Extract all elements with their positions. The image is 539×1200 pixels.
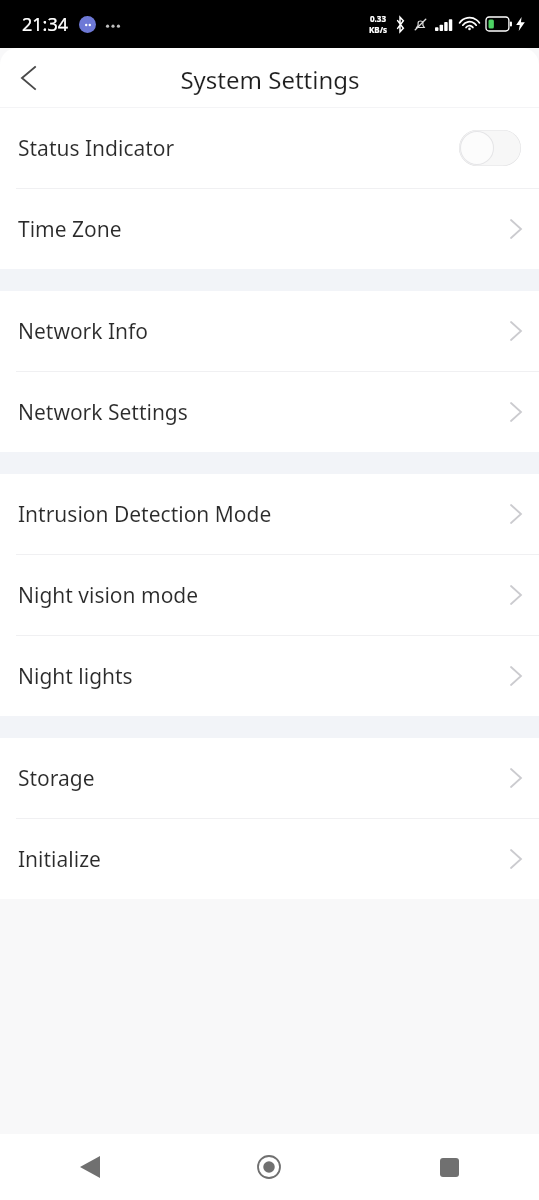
staticText: System Settings [180, 63, 360, 96]
button[interactable]: Recent apps [359, 1134, 539, 1200]
button[interactable]: Storage [0, 738, 539, 818]
button[interactable]: Network Settings [0, 372, 539, 452]
button[interactable]: Back [0, 1134, 179, 1200]
staticText: Storage [18, 764, 511, 793]
staticText: Night lights [18, 662, 511, 691]
staticText: 21:34 [22, 12, 69, 37]
staticText: Night vision mode [18, 581, 511, 610]
staticText: KB/s [369, 24, 387, 35]
button[interactable]: Network Info [0, 291, 539, 371]
button[interactable]: Home [179, 1134, 359, 1200]
staticText: Intrusion Detection Mode [18, 500, 511, 529]
button[interactable]: Initialize [0, 819, 539, 899]
staticText: Status Indicator [18, 134, 459, 163]
staticText: 0.33 [370, 13, 386, 24]
button[interactable]: Status Indicator [0, 108, 539, 188]
button[interactable]: Back [0, 50, 56, 106]
button[interactable]: Night lights [0, 636, 539, 716]
staticText: Time Zone [18, 215, 511, 244]
button[interactable]: Time Zone [0, 189, 539, 269]
button[interactable]: Status Indicator toggle [459, 130, 521, 166]
staticText: Initialize [18, 845, 511, 874]
button[interactable]: Night vision mode [0, 555, 539, 635]
staticText: Network Settings [18, 398, 511, 427]
staticText: Network Info [18, 317, 511, 346]
button[interactable]: Intrusion Detection Mode [0, 474, 539, 554]
